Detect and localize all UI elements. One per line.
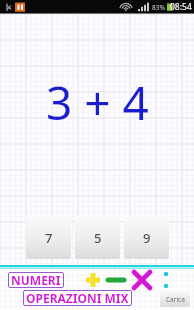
staticText: 7 [45, 229, 53, 247]
button[interactable]: 9 [124, 216, 169, 259]
staticText: 9 [143, 229, 151, 247]
button[interactable]: NUMERI [0, 265, 194, 310]
staticText: OPERAZIONI MIX [26, 290, 129, 306]
button[interactable]: 5 [75, 216, 120, 259]
staticText: 08:54 [170, 1, 192, 13]
button[interactable]: Carica [160, 292, 190, 307]
button[interactable]: 7 [26, 216, 71, 259]
staticText: Carica [166, 295, 185, 304]
staticText: 5 [94, 229, 102, 247]
staticText: 3 + 4 [46, 71, 149, 134]
staticText: 83% [152, 3, 165, 12]
staticText: NUMERI [11, 272, 61, 288]
